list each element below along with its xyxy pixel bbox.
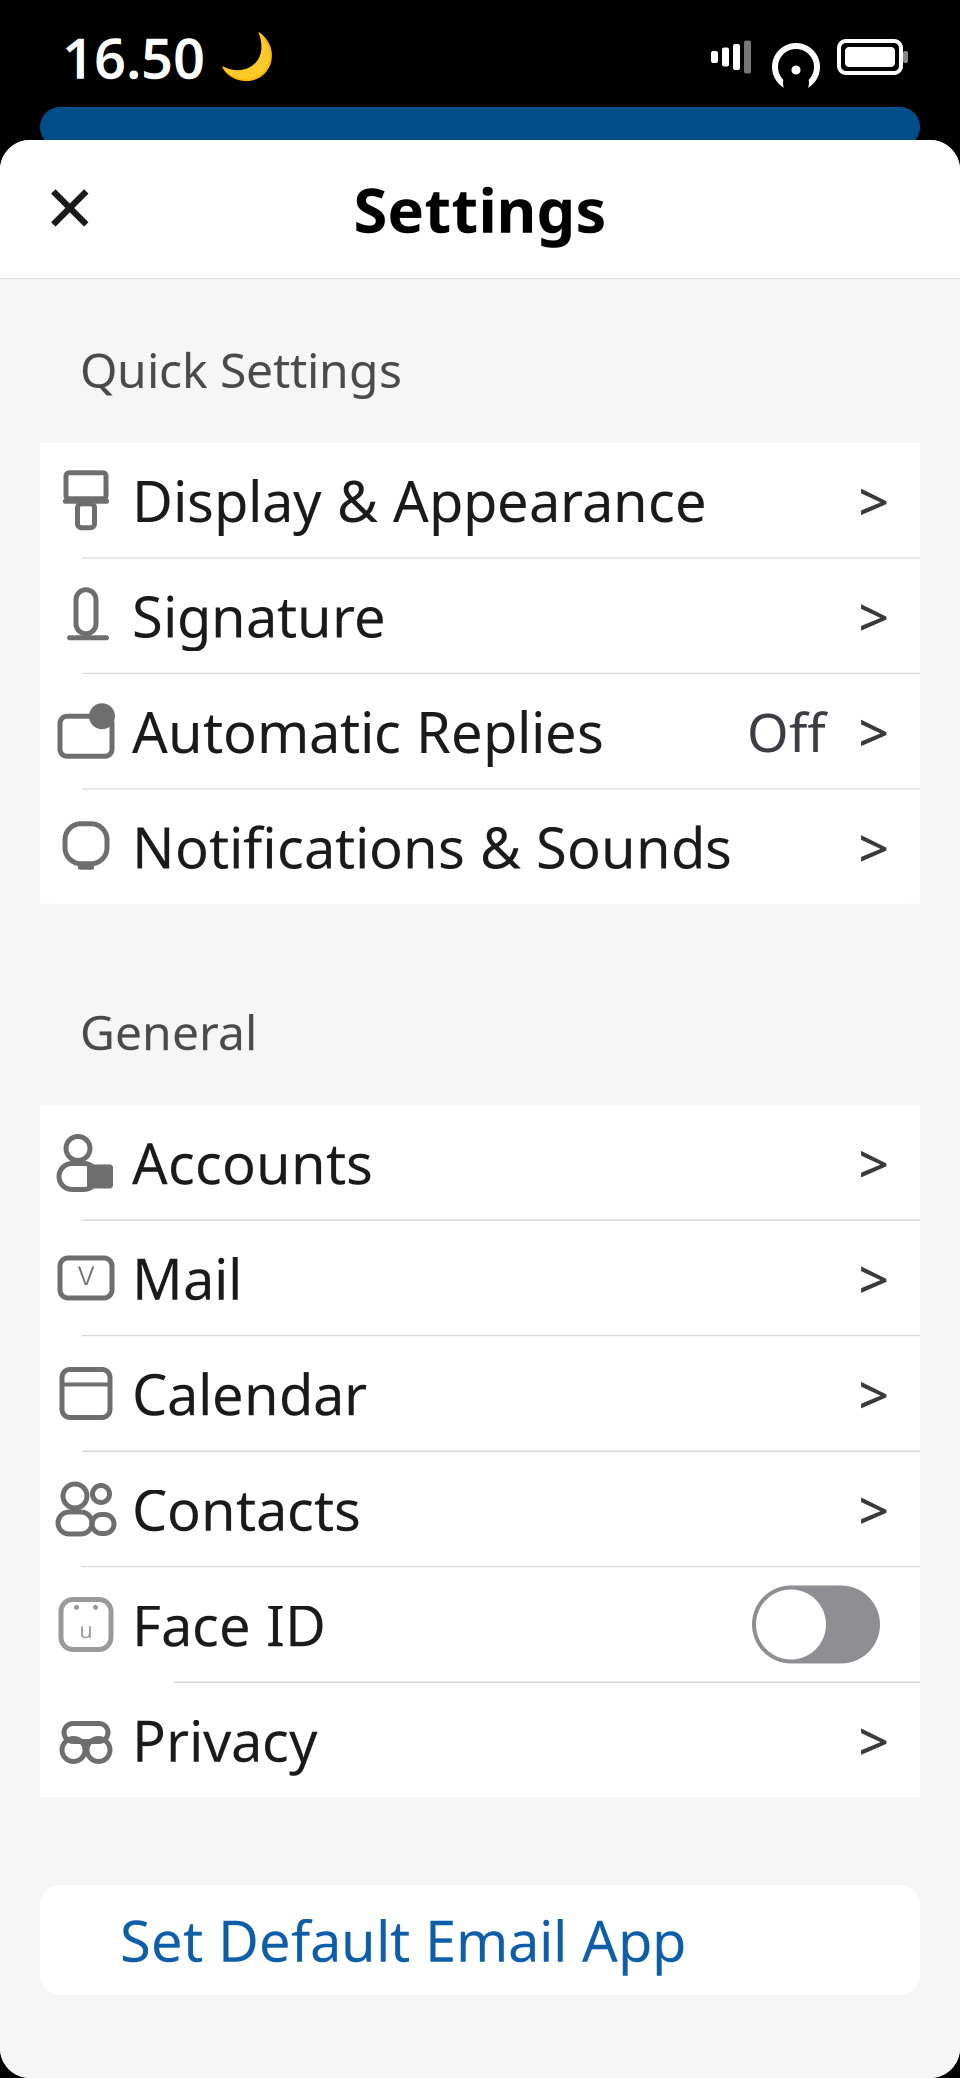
- staticText: >: [858, 580, 889, 651]
- button[interactable]: Contacts: [40, 1452, 920, 1566]
- staticText: Quick Settings: [80, 337, 402, 401]
- staticText: 🌙: [219, 31, 275, 83]
- staticText: >: [858, 1474, 889, 1544]
- staticText: Contacts: [132, 1472, 361, 1546]
- staticText: >: [858, 811, 889, 882]
- staticText: ✕: [43, 173, 97, 245]
- button[interactable]: Calendar: [40, 1336, 920, 1450]
- staticText: Set Default Email App: [120, 1903, 686, 1977]
- button[interactable]: Signature: [40, 559, 920, 673]
- button[interactable]: Privacy: [40, 1683, 920, 1797]
- staticText: >: [858, 465, 889, 536]
- staticText: Accounts: [132, 1125, 373, 1200]
- button[interactable]: u: [40, 1567, 920, 1681]
- staticText: Face ID: [132, 1587, 326, 1662]
- staticText: Display & Appearance: [132, 463, 707, 537]
- button[interactable]: Accounts: [40, 1105, 920, 1219]
- staticText: >: [858, 1243, 889, 1313]
- button[interactable]: Set Default Email App: [40, 1885, 920, 1995]
- staticText: General: [80, 1000, 257, 1063]
- button[interactable]: Close: [30, 169, 110, 249]
- staticText: >: [858, 1705, 889, 1775]
- staticText: 16.50: [62, 20, 205, 94]
- staticText: >: [858, 1127, 889, 1198]
- button[interactable]: Automatic Replies: [40, 674, 920, 788]
- button[interactable]: v: [40, 1221, 920, 1335]
- staticText: Mail: [132, 1241, 242, 1315]
- staticText: Signature: [132, 579, 386, 653]
- staticText: Privacy: [132, 1703, 318, 1777]
- staticText: Notifications & Sounds: [132, 810, 732, 884]
- button[interactable]: Display & Appearance: [40, 443, 920, 557]
- staticText: u: [79, 1616, 92, 1644]
- staticText: Calendar: [132, 1356, 367, 1431]
- staticText: >: [858, 696, 889, 767]
- button[interactable]: Notifications & Sounds: [40, 790, 920, 904]
- staticText: >: [858, 1358, 889, 1429]
- staticText: v: [78, 1249, 94, 1295]
- staticText: Settings: [353, 168, 606, 250]
- staticText: Automatic Replies: [132, 694, 604, 768]
- staticText: Off: [747, 696, 826, 767]
